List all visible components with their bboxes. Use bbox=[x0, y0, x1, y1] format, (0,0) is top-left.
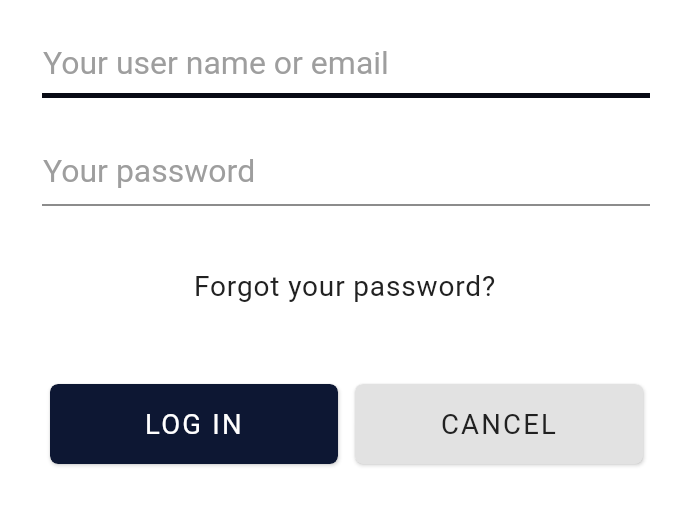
staticText: CANCEL bbox=[441, 408, 558, 440]
staticText: Forgot your password? bbox=[194, 270, 497, 303]
button[interactable]: Forgot your password? bbox=[0, 270, 690, 303]
button[interactable]: CANCEL bbox=[355, 384, 643, 464]
staticText: Your user name or email bbox=[43, 44, 389, 82]
staticText: Your password bbox=[43, 152, 256, 190]
button[interactable]: LOG IN bbox=[50, 384, 338, 464]
staticText: LOG IN bbox=[145, 408, 244, 440]
